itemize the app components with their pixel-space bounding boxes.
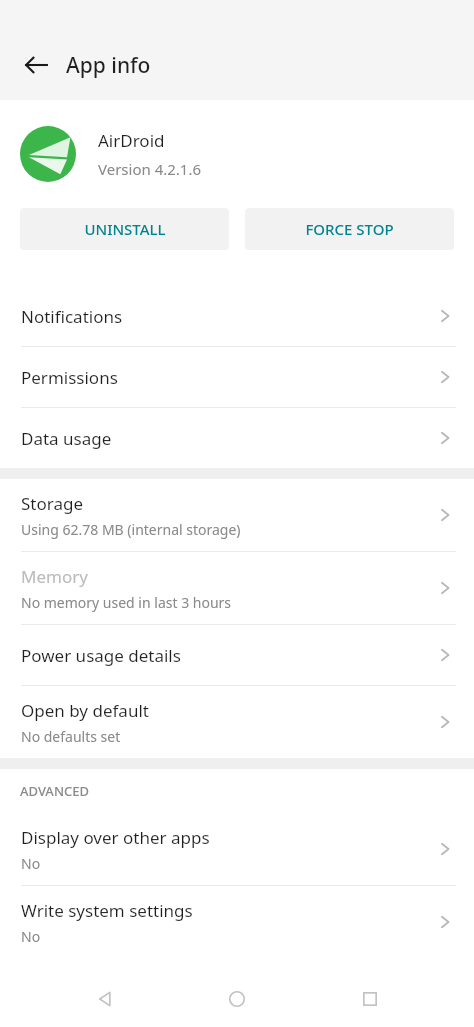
button[interactable]: Memory bbox=[0, 552, 474, 624]
staticText: Notifications bbox=[21, 305, 123, 328]
button[interactable]: Open by default bbox=[0, 686, 474, 758]
staticText: Using 62.78 MB (internal storage) bbox=[21, 520, 241, 539]
staticText: Open by default bbox=[21, 699, 149, 722]
staticText: App info bbox=[66, 51, 151, 80]
button[interactable]: Notifications bbox=[0, 286, 474, 346]
button[interactable]: Back bbox=[77, 971, 133, 1027]
staticText: UNINSTALL bbox=[84, 219, 166, 239]
staticText: No bbox=[21, 927, 41, 946]
staticText: No bbox=[21, 854, 41, 873]
button[interactable]: Back bbox=[14, 43, 58, 87]
staticText: Permissions bbox=[21, 366, 118, 389]
staticText: Power usage details bbox=[21, 644, 181, 667]
staticText: No memory used in last 3 hours bbox=[21, 593, 232, 612]
button[interactable]: Home bbox=[209, 971, 265, 1027]
button[interactable]: Storage bbox=[0, 479, 474, 551]
staticText: Write system settings bbox=[21, 899, 193, 922]
staticText: ADVANCED bbox=[20, 782, 89, 800]
staticText: Storage bbox=[21, 492, 84, 515]
button[interactable]: Recent apps bbox=[342, 971, 398, 1027]
staticText: Display over other apps bbox=[21, 826, 210, 849]
staticText: Data usage bbox=[21, 427, 112, 450]
staticText: No defaults set bbox=[21, 727, 121, 746]
staticText: AirDroid bbox=[98, 129, 165, 152]
button[interactable]: Write system settings bbox=[0, 886, 474, 958]
button[interactable]: Power usage details bbox=[0, 625, 474, 685]
staticText: Version 4.2.1.6 bbox=[98, 159, 202, 179]
button[interactable]: UNINSTALL bbox=[20, 208, 229, 250]
button[interactable]: Data usage bbox=[0, 408, 474, 468]
staticText: FORCE STOP bbox=[305, 219, 394, 239]
button[interactable]: FORCE STOP bbox=[245, 208, 454, 250]
staticText: Memory bbox=[21, 565, 88, 588]
button[interactable]: Permissions bbox=[0, 347, 474, 407]
button[interactable]: Display over other apps bbox=[0, 813, 474, 885]
